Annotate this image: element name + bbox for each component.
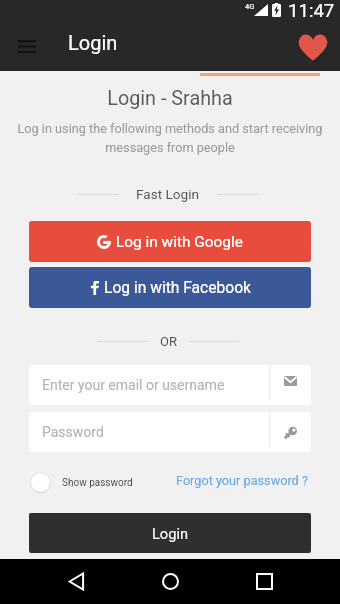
staticText: OR xyxy=(160,334,177,349)
staticText: Login xyxy=(152,525,188,542)
button[interactable]: Recent apps xyxy=(244,561,284,601)
staticText: Login - Srahha xyxy=(0,87,340,110)
staticText: Fast Login xyxy=(136,186,200,202)
button[interactable]: Password xyxy=(29,412,311,452)
button[interactable]: Show password xyxy=(30,472,133,493)
button[interactable]: Home xyxy=(150,561,190,601)
button[interactable]: Forgot your password ? xyxy=(176,473,308,488)
staticText: Log in with Facebook xyxy=(104,279,251,297)
button[interactable]: Favorite xyxy=(295,29,331,65)
button[interactable]: Enter your email or username xyxy=(29,365,311,405)
button[interactable]: Log in with Facebook xyxy=(29,267,311,308)
button[interactable]: Login xyxy=(29,513,311,553)
staticText: Login xyxy=(68,31,118,54)
staticText: Enter your email or username xyxy=(42,377,225,393)
button[interactable]: Open navigation menu xyxy=(9,30,43,64)
staticText: Log in using the following methods and s… xyxy=(0,121,340,155)
staticText: 4G xyxy=(245,2,255,11)
staticText: Log in with Google xyxy=(116,233,243,251)
button[interactable]: Back xyxy=(56,561,96,601)
staticText: Password xyxy=(42,424,104,440)
staticText: 11:47 xyxy=(288,0,335,22)
staticText: Show password xyxy=(62,477,133,489)
button[interactable]: Log in with Google xyxy=(29,221,311,262)
